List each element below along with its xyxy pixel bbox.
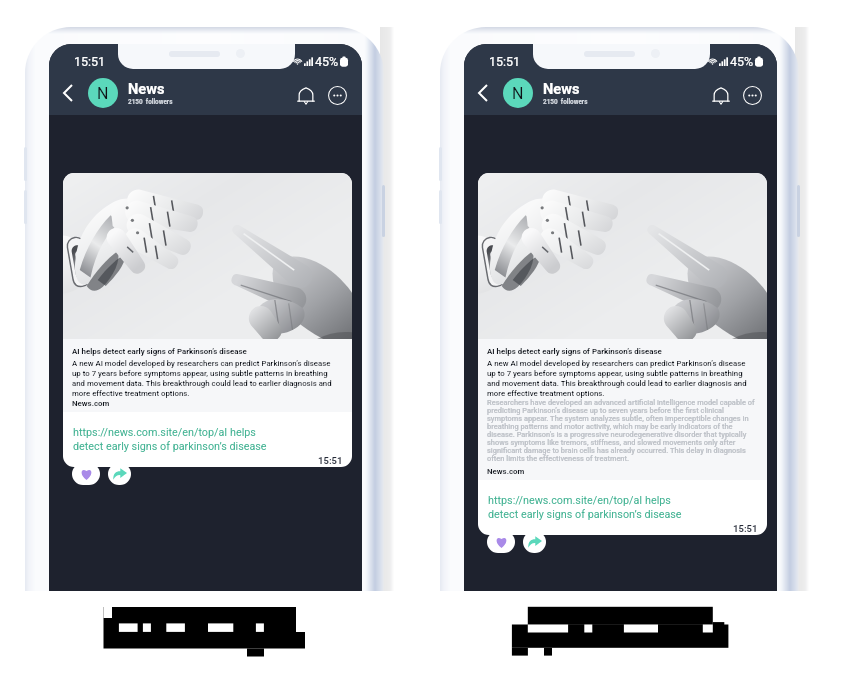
staticText: 2150 followers <box>128 98 173 105</box>
staticText: https://news.com.site/en/top/aI helps de… <box>73 425 267 453</box>
button[interactable]: More options <box>325 83 349 107</box>
staticText: News.com <box>487 466 525 476</box>
staticText: N <box>512 84 524 103</box>
button[interactable]: Back <box>472 80 494 106</box>
staticText: AI helps detect early signs of Parkinson… <box>487 346 662 356</box>
button[interactable]: More options <box>740 83 764 107</box>
staticText: News <box>543 82 580 97</box>
staticText: 15:51 <box>74 54 106 69</box>
staticText: AI helps detect early signs of Parkinson… <box>72 346 247 356</box>
staticText: News <box>128 82 165 97</box>
button[interactable]: AI helps detect early signs of Parkinson… <box>478 173 767 535</box>
staticText: A new AI model developed by researchers … <box>487 358 747 398</box>
button[interactable]: Share <box>108 463 131 485</box>
staticText: 15:51 <box>318 455 343 466</box>
button[interactable]: AI helps detect early signs of Parkinson… <box>63 173 352 467</box>
button[interactable]: Like <box>487 531 515 553</box>
staticText: 15:51 <box>489 54 521 69</box>
staticText: Researchers have developed an advanced a… <box>487 398 755 462</box>
staticText: News.com <box>72 398 110 408</box>
staticText: 45% <box>315 54 339 69</box>
staticText: 2150 followers <box>543 98 588 105</box>
button[interactable]: Share <box>523 531 546 553</box>
staticText: 45% <box>730 54 754 69</box>
button[interactable]: Notifications <box>293 82 319 108</box>
button[interactable]: Like <box>72 463 100 485</box>
button[interactable]: Back <box>57 80 79 106</box>
staticText: https://news.com.site/en/top/aI helps de… <box>488 493 682 521</box>
staticText: N <box>97 84 109 103</box>
button[interactable]: Notifications <box>708 82 734 108</box>
staticText: 15:51 <box>733 523 758 534</box>
staticText: A new AI model developed by researchers … <box>72 358 332 398</box>
